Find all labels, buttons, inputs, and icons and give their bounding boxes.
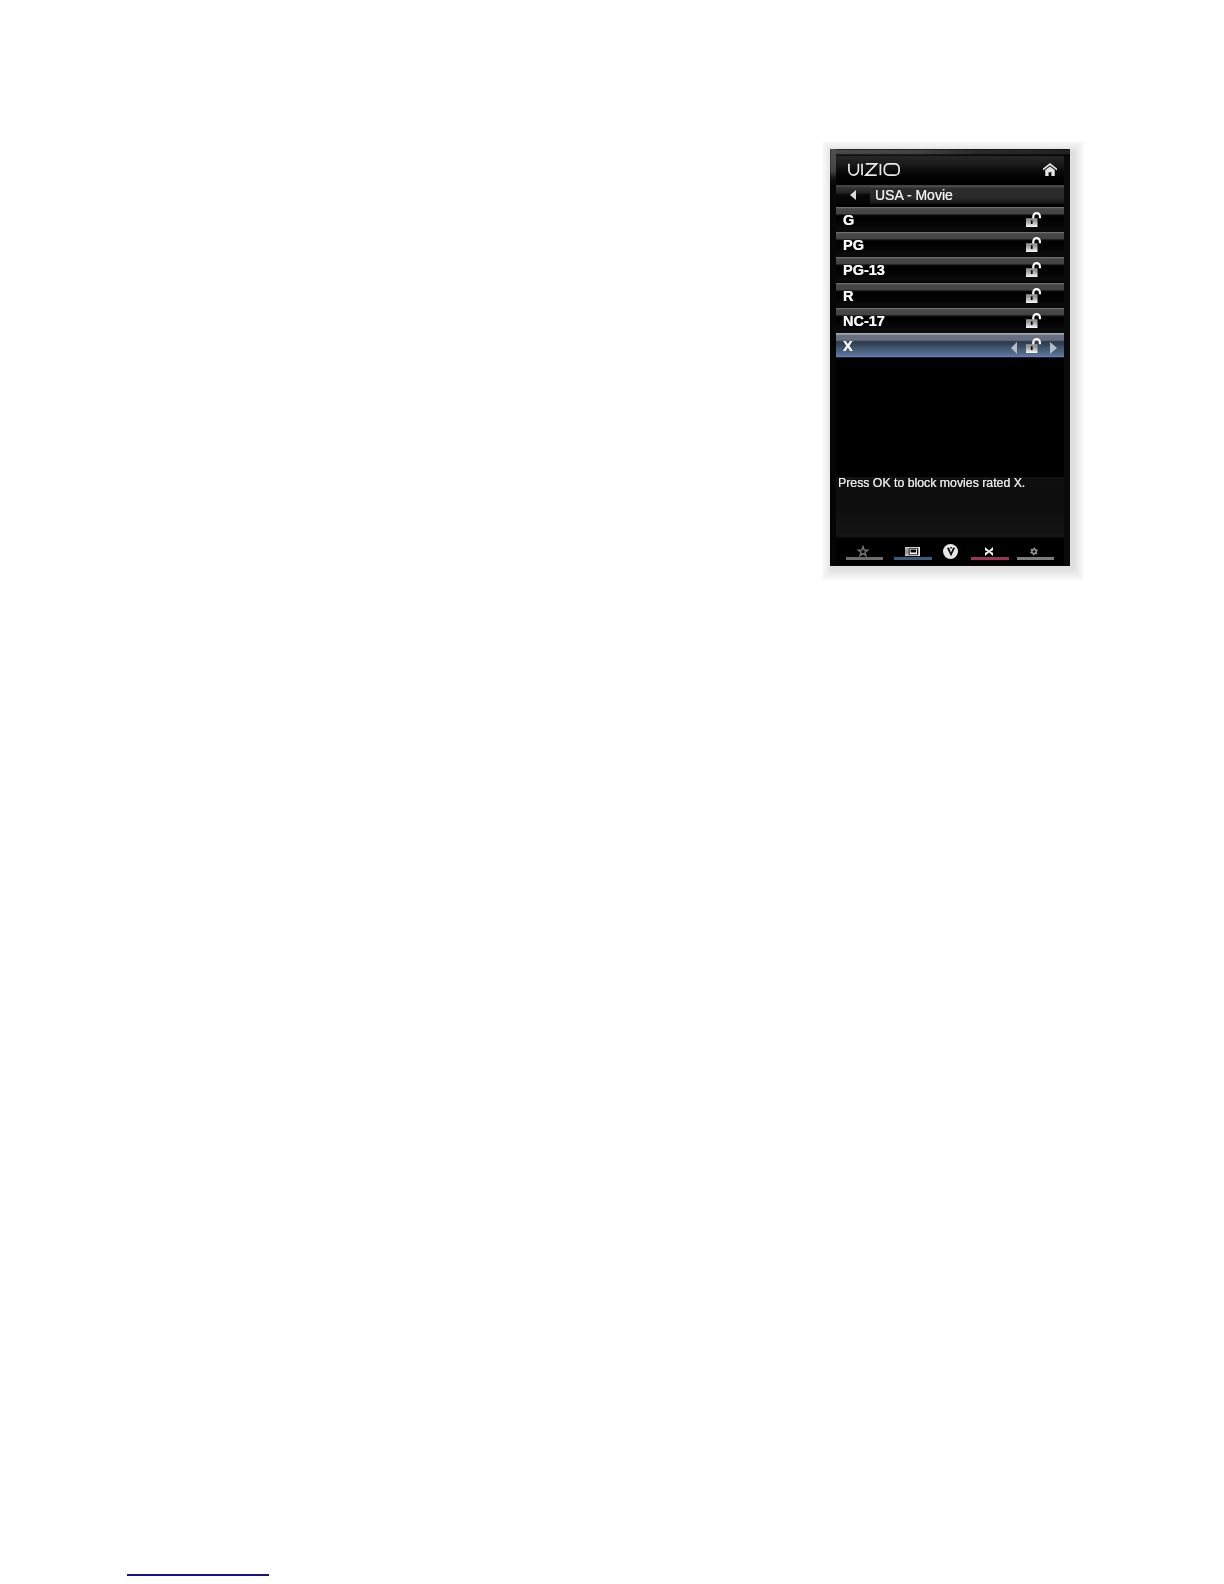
button[interactable]: PG-13 [836,257,1064,282]
button[interactable]: Picture [894,541,932,560]
button[interactable]: Home [1042,162,1058,176]
button[interactable]: Parental controls [971,541,1009,560]
staticText: R [843,288,854,304]
button[interactable]: NC-17 [836,308,1064,333]
staticText: NC-17 [843,313,885,329]
button[interactable]: USA - Movie [836,185,1064,204]
staticText: PG-13 [843,262,885,278]
staticText: PG [843,237,864,253]
button[interactable]: R [836,283,1064,308]
staticText: X [843,338,853,354]
staticText: USA - Movie [875,187,953,203]
button[interactable]: VIZIO menu [943,544,958,559]
staticText: Press OK to block movies rated X. [838,476,1026,490]
button[interactable]: PG [836,232,1064,257]
button[interactable]: X [836,333,1064,358]
button[interactable]: Favorites [846,541,883,560]
staticText: G [843,212,855,228]
button[interactable]: G [836,207,1064,232]
button[interactable]: Settings [1017,541,1054,560]
